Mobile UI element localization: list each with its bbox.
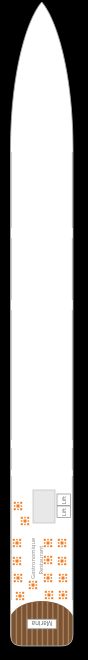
button[interactable]: Deck plan (0, 0, 88, 660)
